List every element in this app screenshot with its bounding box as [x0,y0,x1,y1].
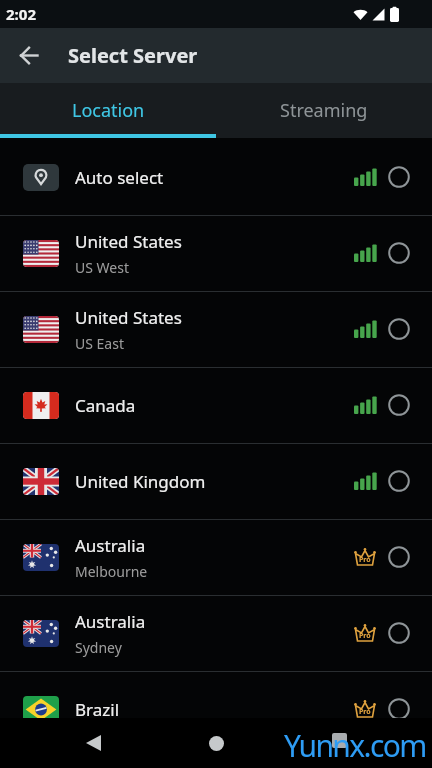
button[interactable] [388,622,410,644]
button[interactable] [388,698,410,720]
staticText: United States [75,230,182,253]
button[interactable]: Brazil [0,671,432,747]
staticText: Pro [359,631,371,641]
button[interactable]: Australia [0,595,432,671]
staticText: United States [75,306,182,329]
staticText: Pro [359,707,371,717]
button[interactable] [388,166,410,188]
staticText: Auto select [75,166,164,189]
button[interactable] [0,28,58,83]
staticText: Streaming [280,98,368,123]
staticText: Location [72,98,145,123]
button[interactable] [78,728,108,758]
button[interactable] [388,470,410,492]
button[interactable] [388,394,410,416]
staticText: Australia [75,534,146,557]
button[interactable]: Auto select [0,139,432,215]
staticText: Canada [75,394,136,417]
staticText: US West [75,258,129,277]
button[interactable]: United Kingdom [0,443,432,519]
button[interactable] [201,728,231,758]
button[interactable]: Streaming [216,83,432,138]
staticText: United Kingdom [75,470,206,493]
staticText: Melbourne [75,562,148,581]
button[interactable] [388,546,410,568]
staticText: Australia [75,610,146,633]
button[interactable]: United States [0,215,432,291]
button[interactable]: Location [0,83,216,138]
staticText: Yunnx.com [284,725,426,766]
staticText: Sydney [75,638,122,657]
button[interactable] [324,725,354,755]
staticText: Brazil [75,698,120,721]
staticText: Select Server [68,42,198,69]
staticText: 2:02 [6,4,36,24]
button[interactable]: Australia [0,519,432,595]
button[interactable] [388,318,410,340]
button[interactable] [388,242,410,264]
button[interactable]: United States [0,291,432,367]
button[interactable]: Canada [0,367,432,443]
staticText: US East [75,334,124,353]
staticText: Pro [359,555,371,565]
